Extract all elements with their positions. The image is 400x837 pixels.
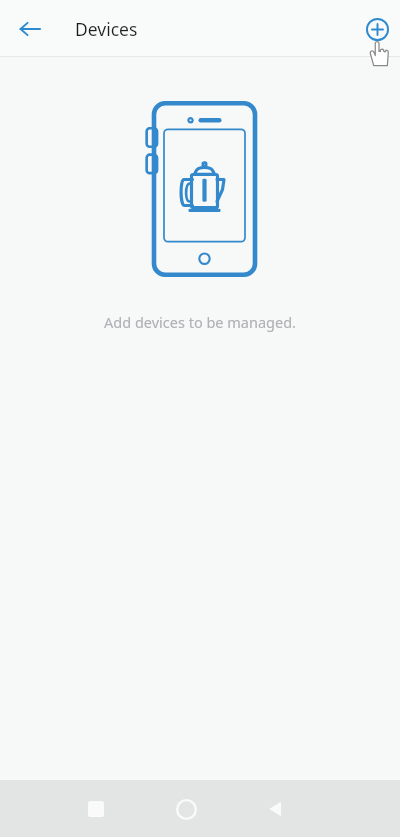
staticText: Add devices to be managed. <box>0 312 400 332</box>
button[interactable]: Home <box>162 785 210 833</box>
staticText: Devices <box>75 17 138 41</box>
button[interactable]: Add device <box>355 7 399 51</box>
button[interactable]: Back <box>252 785 300 833</box>
button[interactable]: Back <box>8 7 52 51</box>
button[interactable]: Recent apps <box>72 785 120 833</box>
